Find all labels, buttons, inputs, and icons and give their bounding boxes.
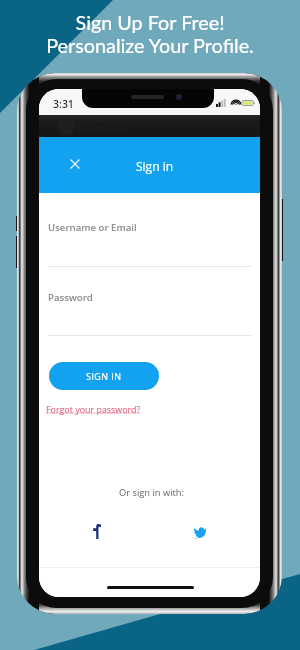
staticText: Sign in bbox=[136, 158, 174, 174]
staticText: Sign Up For Free! Personalize Your Profi… bbox=[0, 10, 300, 57]
button[interactable]: Sign in with Facebook bbox=[85, 520, 108, 543]
button[interactable]: Close bbox=[64, 153, 86, 175]
staticText: Forgot your password? bbox=[46, 403, 141, 415]
button[interactable]: Sign in with Twitter bbox=[188, 521, 211, 544]
staticText: 3:31 bbox=[53, 97, 74, 111]
button[interactable]: Forgot your password? bbox=[46, 403, 141, 415]
staticText: Or sign in with: bbox=[119, 486, 184, 499]
staticText: Username or Email bbox=[48, 221, 137, 234]
staticText: Password bbox=[48, 291, 93, 304]
button[interactable]: SIGN IN bbox=[49, 362, 159, 390]
staticText: SIGN IN bbox=[86, 370, 122, 382]
